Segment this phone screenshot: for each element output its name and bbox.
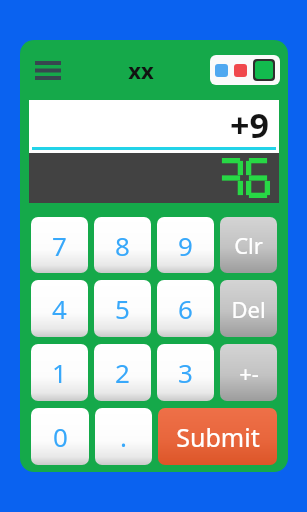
- staticText: Clr: [234, 230, 263, 260]
- button[interactable]: 0: [31, 407, 89, 465]
- staticText: 3: [178, 355, 193, 390]
- staticText: +-: [239, 358, 259, 388]
- button[interactable]: xx: [128, 55, 154, 85]
- button[interactable]: +-: [220, 343, 277, 401]
- button[interactable]: 5: [94, 279, 151, 337]
- staticText: 1: [52, 355, 67, 390]
- button[interactable]: Submit: [158, 407, 277, 465]
- button[interactable]: Green player active: [255, 61, 273, 79]
- staticText: 6: [178, 291, 193, 326]
- staticText: 0: [53, 419, 68, 454]
- staticText: Del: [231, 294, 266, 324]
- button[interactable]: Red player: [234, 64, 247, 77]
- staticText: xx: [128, 55, 154, 85]
- button[interactable]: 2: [94, 343, 151, 401]
- button[interactable]: 6: [157, 279, 214, 337]
- button[interactable]: 8: [94, 216, 151, 273]
- button[interactable]: 9: [157, 216, 214, 273]
- staticText: 7: [52, 228, 67, 263]
- button[interactable]: .: [95, 407, 152, 465]
- button[interactable]: 3: [157, 343, 214, 401]
- staticText: 2: [115, 355, 130, 390]
- button[interactable]: 4: [31, 279, 88, 337]
- button[interactable]: 1: [31, 343, 88, 401]
- button[interactable]: +9: [29, 100, 279, 153]
- staticText: 9: [178, 228, 193, 263]
- staticText: .: [120, 419, 127, 454]
- staticText: 8: [115, 228, 130, 263]
- button[interactable]: Blue player: [215, 64, 228, 77]
- button[interactable]: 7: [31, 216, 88, 273]
- staticText: 4: [52, 291, 67, 326]
- staticText: +9: [230, 102, 269, 148]
- staticText: 5: [115, 291, 130, 326]
- button[interactable]: Del: [220, 279, 277, 337]
- button[interactable]: Clr: [220, 216, 277, 273]
- staticText: Submit: [176, 420, 260, 454]
- button[interactable]: Menu: [30, 52, 66, 88]
